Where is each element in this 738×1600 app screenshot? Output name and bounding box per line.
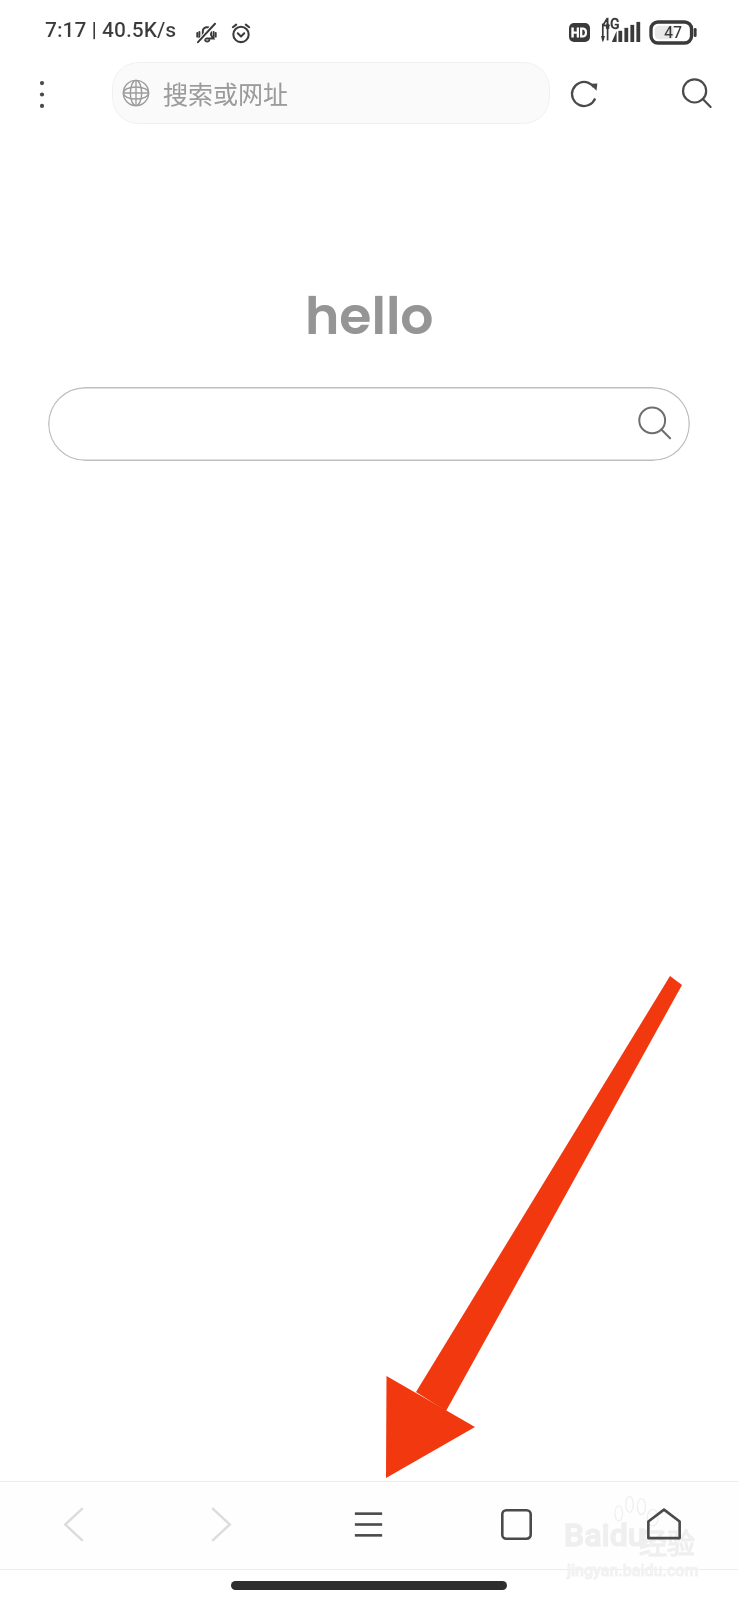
button[interactable]: Search [674, 71, 722, 119]
staticText: Baidu [564, 1516, 646, 1554]
button[interactable]: Back [0, 1483, 147, 1569]
staticText: hello [305, 279, 434, 352]
button[interactable]: 搜索或网址 [112, 62, 550, 124]
staticText: 7:17 | 40.5K/s [45, 18, 177, 43]
staticText: 4G [602, 16, 620, 32]
staticText: 经验 [639, 1522, 696, 1563]
button[interactable]: Menu [294, 1483, 442, 1569]
staticText: HD [571, 26, 588, 40]
button[interactable]: Search box [48, 387, 690, 461]
button[interactable]: Forward [147, 1483, 294, 1569]
button[interactable]: Home [590, 1483, 738, 1569]
staticText: jingyan.baidu.com [567, 1561, 699, 1580]
staticText: 搜索或网址 [163, 75, 289, 111]
staticText: 47 [664, 23, 683, 42]
button[interactable]: Tabs [442, 1483, 590, 1569]
button[interactable]: Refresh [560, 70, 608, 118]
button[interactable]: More options [20, 72, 64, 116]
